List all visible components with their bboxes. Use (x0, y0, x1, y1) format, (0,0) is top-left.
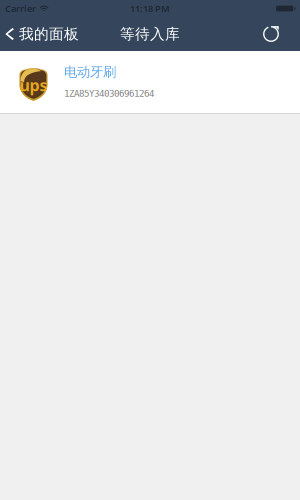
staticText: 电动牙刷 (64, 64, 116, 80)
button[interactable]: ups (0, 51, 300, 113)
button[interactable]: 我的面板 (0, 17, 87, 51)
staticText: 1ZA85Y340306961264 (64, 88, 154, 99)
staticText: 我的面板 (19, 25, 79, 43)
staticText: Carrier (5, 2, 36, 15)
staticText: ups (19, 74, 47, 96)
staticText: 等待入库 (120, 25, 180, 43)
button[interactable]: Refresh (252, 17, 300, 50)
staticText: 11:18 PM (130, 2, 170, 15)
